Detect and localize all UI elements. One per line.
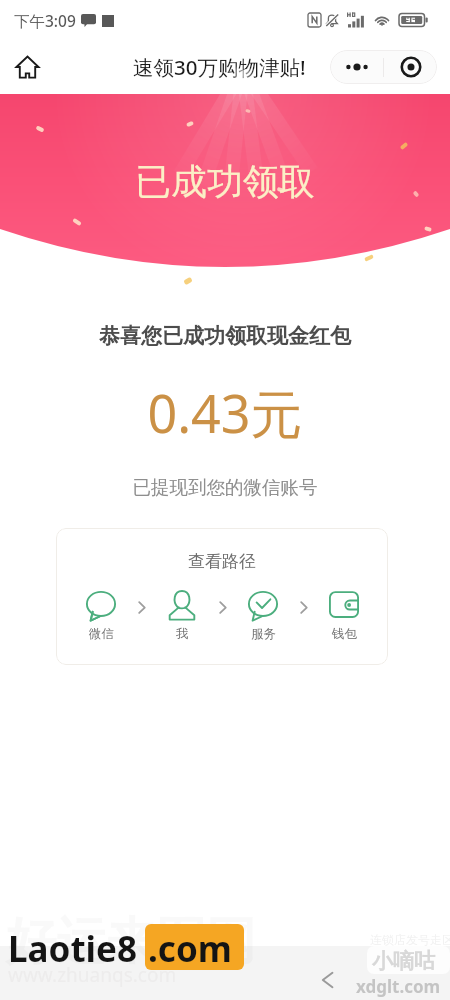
button[interactable]: More (330, 50, 383, 84)
staticText: 连锁店发号走区 (370, 932, 450, 947)
staticText: 已成功领取 (135, 159, 315, 204)
staticText: 服务 (251, 626, 276, 642)
staticText: 小嘀咕 (372, 948, 435, 974)
staticText: www.zhuanqs.com (8, 962, 177, 988)
staticText: 我 (176, 626, 189, 642)
staticText: 下午3:09 (14, 10, 76, 31)
button[interactable]: 微信 (76, 590, 126, 642)
staticText: xdglt.com (356, 975, 441, 998)
staticText: 恭喜您已成功领取现金红包 (0, 323, 450, 349)
staticText: 微信 (89, 626, 114, 642)
staticText: 好运来图网 (6, 910, 256, 973)
button[interactable]: 我 (157, 590, 207, 642)
staticText: 查看路径 (188, 551, 256, 572)
button[interactable]: Back (305, 958, 349, 1000)
staticText: 钱包 (332, 626, 357, 642)
button[interactable]: Home (7, 47, 47, 87)
staticText: 已提现到您的微信账号 (0, 476, 450, 499)
button[interactable]: 钱包 (319, 590, 369, 642)
button[interactable]: 服务 (238, 590, 288, 642)
button[interactable]: 查看路径 (56, 528, 388, 665)
staticText: .com (148, 925, 232, 973)
staticText: Laotie8 (8, 925, 137, 973)
staticText: 0.43元 (0, 377, 450, 448)
button[interactable]: Close (384, 50, 437, 84)
staticText: 速领30万购物津贴! (133, 53, 306, 81)
